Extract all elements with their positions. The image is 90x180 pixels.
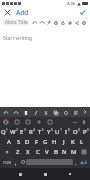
button[interactable]: Stickers bbox=[14, 119, 20, 125]
button[interactable]: Back bbox=[15, 169, 25, 179]
button[interactable]: Settings bbox=[36, 119, 42, 125]
button[interactable]: More options bbox=[82, 107, 88, 117]
staticText: Note Title bbox=[5, 19, 28, 26]
button[interactable]: Add bbox=[15, 7, 30, 18]
button[interactable]: Enter bbox=[79, 157, 88, 167]
button[interactable]: Redo bbox=[38, 19, 45, 26]
button[interactable]: O bbox=[72, 127, 81, 137]
staticText: J bbox=[63, 138, 65, 146]
button[interactable]: A bbox=[4, 137, 14, 147]
button[interactable]: X bbox=[23, 147, 33, 157]
staticText: 1 bbox=[6, 128, 8, 132]
button[interactable]: , bbox=[13, 157, 19, 167]
staticText: A bbox=[7, 138, 11, 146]
button[interactable]: Home bbox=[40, 169, 50, 179]
button[interactable]: More bbox=[80, 19, 87, 26]
button[interactable]: Cut bbox=[42, 109, 49, 116]
button[interactable]: F bbox=[32, 137, 41, 147]
staticText: 2 bbox=[16, 128, 18, 132]
staticText: Add bbox=[16, 8, 29, 17]
button[interactable]: Z bbox=[13, 147, 23, 157]
button[interactable]: Space bbox=[26, 159, 73, 165]
staticText: H bbox=[52, 138, 57, 146]
button[interactable]: Bold bbox=[22, 109, 29, 116]
staticText: X bbox=[26, 148, 30, 156]
button[interactable]: Y bbox=[45, 127, 54, 137]
staticText: Q bbox=[1, 128, 6, 136]
button[interactable]: Italic bbox=[32, 109, 39, 116]
button[interactable]: D bbox=[23, 137, 32, 147]
button[interactable]: Q bbox=[0, 127, 9, 137]
button[interactable]: Clear format bbox=[62, 109, 69, 116]
staticText: R bbox=[29, 128, 33, 136]
button[interactable]: U bbox=[54, 127, 63, 137]
staticText: D bbox=[25, 138, 30, 146]
button[interactable]: S bbox=[14, 137, 23, 147]
staticText: T bbox=[38, 128, 42, 136]
staticText: P bbox=[83, 128, 87, 136]
staticText: Start writing bbox=[3, 35, 33, 42]
button[interactable]: Undo bbox=[31, 19, 38, 26]
button[interactable]: Lock bbox=[59, 19, 66, 26]
staticText: F bbox=[35, 138, 39, 146]
button[interactable]: B bbox=[51, 147, 60, 157]
button[interactable]: P bbox=[81, 127, 90, 137]
staticText: 4 bbox=[33, 128, 35, 132]
staticText: W bbox=[10, 128, 16, 136]
staticText: ?123 bbox=[3, 160, 12, 165]
staticText: 0 bbox=[87, 128, 89, 132]
staticText: O bbox=[73, 128, 78, 136]
button[interactable]: N bbox=[60, 147, 69, 157]
button[interactable]: Backspace bbox=[78, 147, 90, 157]
staticText: G bbox=[43, 138, 48, 146]
button[interactable]: GIF bbox=[25, 119, 31, 125]
button[interactable]: . bbox=[73, 157, 79, 167]
button[interactable]: Close bbox=[3, 8, 12, 17]
staticText: … bbox=[73, 118, 77, 125]
staticText: , bbox=[15, 159, 17, 166]
button[interactable]: ?123 bbox=[2, 157, 13, 167]
button[interactable]: R bbox=[27, 127, 36, 137]
button[interactable]: I bbox=[63, 127, 72, 137]
button[interactable]: V bbox=[42, 147, 51, 157]
staticText: M bbox=[71, 148, 77, 156]
button[interactable]: E bbox=[18, 127, 27, 137]
button[interactable]: C bbox=[33, 147, 42, 157]
button[interactable]: Shift bbox=[0, 147, 13, 157]
button[interactable]: Copy bbox=[52, 109, 59, 116]
staticText: Y bbox=[47, 128, 51, 136]
button[interactable]: Google search bbox=[3, 119, 9, 125]
button[interactable]: L bbox=[77, 137, 86, 147]
staticText: 9 bbox=[78, 128, 80, 132]
button[interactable]: J bbox=[59, 137, 68, 147]
button[interactable]: K bbox=[68, 137, 77, 147]
staticText: N bbox=[62, 148, 67, 156]
button[interactable]: M bbox=[69, 147, 78, 157]
button[interactable]: Redo bbox=[12, 109, 19, 116]
button[interactable]: Save bbox=[78, 8, 87, 17]
staticText: K bbox=[71, 138, 75, 146]
button[interactable]: Attach bbox=[45, 19, 52, 26]
button[interactable]: G bbox=[41, 137, 50, 147]
staticText: 3 bbox=[24, 128, 26, 132]
button[interactable]: Align bbox=[72, 109, 79, 116]
button[interactable]: Share bbox=[73, 19, 80, 26]
button[interactable]: Emoji bbox=[19, 157, 26, 167]
button[interactable]: Reminder bbox=[52, 19, 59, 26]
staticText: B bbox=[54, 148, 58, 156]
button[interactable]: Clipboard bbox=[47, 119, 53, 125]
staticText: E bbox=[20, 128, 24, 136]
button[interactable]: T bbox=[36, 127, 45, 137]
staticText: 8 bbox=[68, 128, 70, 132]
button[interactable]: Recents bbox=[65, 169, 75, 179]
button[interactable]: Color bbox=[66, 19, 73, 26]
staticText: V bbox=[45, 148, 49, 156]
staticText: Z bbox=[16, 148, 20, 156]
button[interactable]: Voice input bbox=[81, 119, 87, 125]
button[interactable]: Note Title bbox=[3, 19, 29, 26]
button[interactable]: W bbox=[9, 127, 18, 137]
staticText: C bbox=[36, 148, 40, 156]
button[interactable]: H bbox=[50, 137, 59, 147]
button[interactable]: Undo bbox=[2, 109, 9, 116]
staticText: S bbox=[17, 138, 21, 146]
